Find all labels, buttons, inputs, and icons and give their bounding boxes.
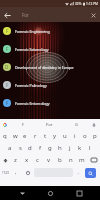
staticText: e xyxy=(23,132,27,140)
staticText: k xyxy=(78,144,82,152)
button[interactable]: F xyxy=(0,40,100,58)
button[interactable]: y xyxy=(50,130,60,142)
button[interactable]: b xyxy=(54,154,65,166)
staticText: g xyxy=(48,144,52,152)
staticText: Forensic Seismology xyxy=(15,47,49,52)
button[interactable]: k xyxy=(75,142,85,154)
button[interactable]: n xyxy=(65,154,76,166)
button[interactable]: Back xyxy=(15,186,29,200)
button[interactable]: p xyxy=(90,130,100,142)
button[interactable]: F xyxy=(0,94,100,112)
button[interactable]: Clear search xyxy=(87,9,99,21)
button[interactable]: q xyxy=(0,130,10,142)
button[interactable]: o xyxy=(80,130,90,142)
staticText: For xyxy=(46,122,53,128)
button[interactable]: ?123 xyxy=(0,166,11,179)
button[interactable]: Voice input xyxy=(90,121,98,129)
button[interactable]: l xyxy=(85,142,95,154)
staticText: c xyxy=(36,156,39,164)
staticText: F xyxy=(6,82,9,88)
button[interactable]: . xyxy=(73,166,85,179)
button[interactable]: Emoji xyxy=(21,166,34,179)
button[interactable]: x xyxy=(21,154,32,166)
staticText: , xyxy=(15,169,17,176)
staticText: ?123 xyxy=(2,171,9,175)
button[interactable]: , xyxy=(11,166,21,179)
button[interactable]: F xyxy=(0,22,100,40)
staticText: q xyxy=(3,132,7,140)
button[interactable]: D xyxy=(0,58,100,76)
button[interactable]: u xyxy=(60,130,70,142)
button[interactable]: F xyxy=(17,119,29,130)
button[interactable]: w xyxy=(10,130,20,142)
staticText: Development of dentistry in Europe xyxy=(15,65,74,70)
staticText: o xyxy=(83,132,87,140)
staticText: b xyxy=(58,156,62,164)
button[interactable]: Recents xyxy=(72,186,86,200)
button[interactable]: f xyxy=(35,142,45,154)
staticText: a xyxy=(8,144,12,152)
staticText: G xyxy=(75,122,78,127)
button[interactable]: z xyxy=(10,154,21,166)
button[interactable]: d xyxy=(25,142,35,154)
button[interactable]: s xyxy=(15,142,25,154)
button[interactable]: Backspace xyxy=(87,154,100,166)
staticText: n xyxy=(69,156,73,164)
staticText: f xyxy=(39,144,42,152)
button[interactable]: v xyxy=(43,154,54,166)
staticText: Forensic Engineering xyxy=(15,29,50,34)
staticText: F xyxy=(6,46,9,52)
staticText: z xyxy=(14,156,17,164)
staticText: y xyxy=(53,132,57,140)
staticText: v xyxy=(47,156,51,164)
button[interactable]: Google xyxy=(1,121,9,129)
button[interactable]: a xyxy=(5,142,15,154)
button[interactable]: h xyxy=(55,142,65,154)
staticText: u xyxy=(63,132,67,140)
staticText: l xyxy=(89,144,91,152)
button[interactable]: Shift xyxy=(0,154,10,166)
staticText: Forensic Entomology xyxy=(15,101,50,106)
staticText: 1:13 PM xyxy=(86,2,98,6)
staticText: F xyxy=(22,122,25,127)
button[interactable]: c xyxy=(32,154,43,166)
staticText: w xyxy=(13,132,18,140)
button[interactable]: i xyxy=(70,130,80,142)
staticText: 32% xyxy=(75,2,82,6)
staticText: x xyxy=(25,156,29,164)
staticText: F xyxy=(6,100,9,106)
staticText: Forensic Palinology xyxy=(15,83,47,88)
button[interactable]: r xyxy=(30,130,40,142)
staticText: j xyxy=(69,144,71,152)
staticText: . xyxy=(78,169,80,176)
button[interactable]: G xyxy=(71,119,82,130)
button[interactable]: For xyxy=(43,119,56,130)
staticText: h xyxy=(58,144,62,152)
button[interactable]: g xyxy=(45,142,55,154)
button[interactable]: t xyxy=(40,130,50,142)
button[interactable]: e xyxy=(20,130,30,142)
button[interactable]: m xyxy=(76,154,87,166)
button[interactable]: Home xyxy=(43,186,57,200)
staticText: t xyxy=(44,132,47,140)
button[interactable]: j xyxy=(65,142,75,154)
button[interactable]: Back xyxy=(1,9,13,21)
staticText: F xyxy=(6,28,9,34)
staticText: p xyxy=(93,132,97,140)
staticText: m xyxy=(79,156,85,164)
staticText: r xyxy=(34,132,37,140)
staticText: s xyxy=(19,144,22,152)
button[interactable]: Search xyxy=(85,168,96,178)
staticText: For xyxy=(22,12,29,18)
staticText: i xyxy=(74,132,76,140)
staticText: D xyxy=(5,64,9,70)
button[interactable]: F xyxy=(0,76,100,94)
staticText: d xyxy=(28,144,32,152)
